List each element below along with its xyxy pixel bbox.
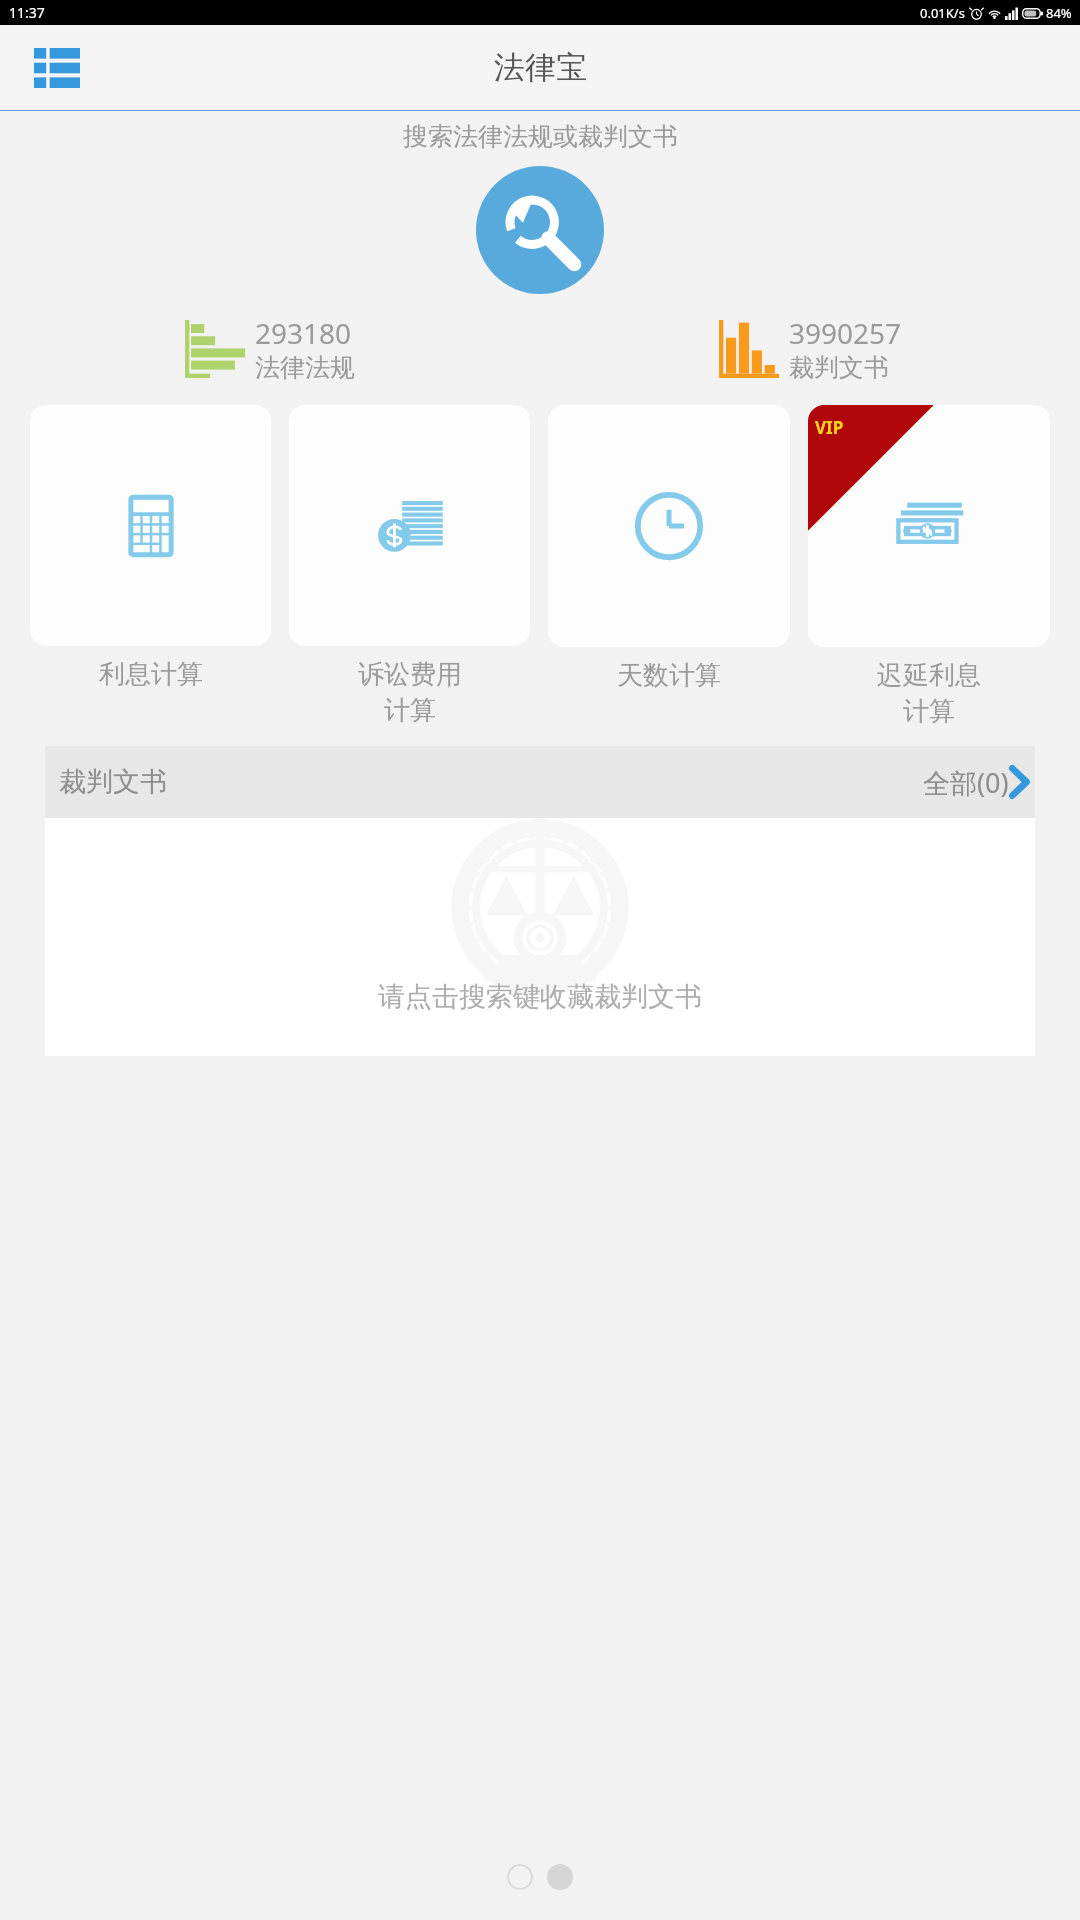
staticText: 天数计算 [617, 659, 721, 692]
button[interactable] [547, 1864, 573, 1890]
staticText: 全部(0) [923, 764, 1009, 801]
staticText: 请点击搜索键收藏裁判文书 [378, 980, 702, 1014]
staticText: 利息计算 [99, 658, 203, 691]
staticText: 裁判文书 [789, 352, 889, 383]
staticText: 11:37 [9, 3, 45, 22]
staticText: 3990257 [789, 314, 902, 352]
button[interactable]: 293180 [0, 314, 540, 383]
staticText: 84% [1046, 4, 1072, 22]
button[interactable]: Menu [26, 37, 88, 99]
button[interactable]: 诉讼费用 计算 [289, 405, 530, 727]
staticText: 迟延利息 计算 [877, 659, 981, 728]
button[interactable]: Search [476, 166, 604, 294]
button[interactable]: 利息计算 [30, 405, 271, 691]
staticText: 诉讼费用 计算 [358, 658, 462, 727]
staticText: 裁判文书 [59, 765, 167, 799]
staticText: VIP [815, 416, 844, 439]
staticText: 0.01K/s [920, 4, 965, 22]
button[interactable]: 3990257 [540, 314, 1080, 383]
staticText: 法律法规 [255, 352, 355, 383]
button[interactable]: 裁判文书 [45, 746, 1035, 818]
staticText: 法律宝 [494, 48, 587, 87]
button[interactable]: 天数计算 [548, 405, 790, 692]
staticText: 293180 [255, 314, 352, 352]
button[interactable] [507, 1864, 533, 1890]
button[interactable]: VIP [808, 405, 1050, 728]
staticText: 搜索法律法规或裁判文书 [403, 121, 678, 152]
